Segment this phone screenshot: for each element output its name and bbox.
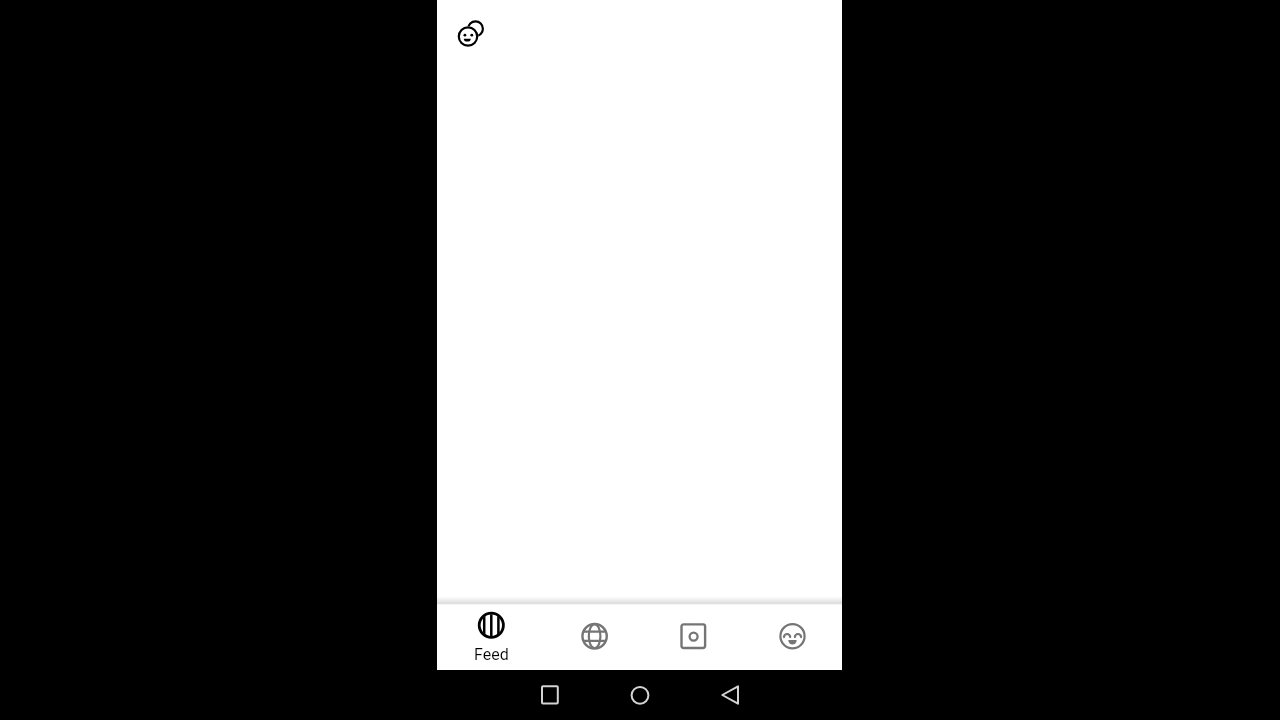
button[interactable] (526, 672, 574, 720)
button[interactable] (454, 15, 484, 49)
button[interactable] (616, 672, 664, 720)
button[interactable] (441, 604, 542, 670)
button[interactable] (706, 672, 754, 720)
button[interactable] (645, 604, 742, 670)
button[interactable] (742, 604, 842, 670)
staticText: Feed (474, 645, 509, 664)
button[interactable] (544, 604, 645, 670)
